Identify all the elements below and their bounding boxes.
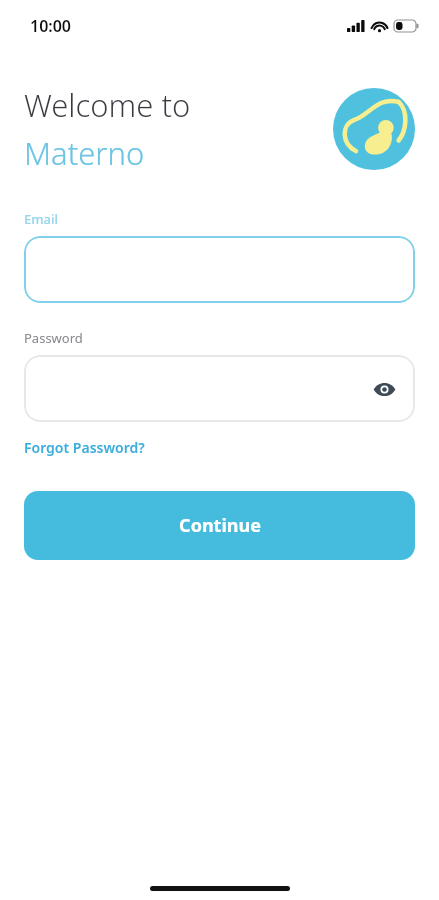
staticText: Password bbox=[24, 329, 83, 347]
button[interactable]: Continue bbox=[24, 491, 415, 560]
button[interactable]: Forgot Password? bbox=[24, 438, 145, 457]
staticText: Forgot Password? bbox=[24, 438, 145, 457]
staticText: Email bbox=[24, 210, 59, 228]
staticText: Continue bbox=[179, 513, 261, 538]
staticText: Materno bbox=[24, 132, 145, 174]
button[interactable]: Show password bbox=[367, 372, 401, 406]
staticText: 10:00 bbox=[30, 15, 72, 37]
button[interactable]: Show password bbox=[24, 355, 415, 422]
staticText: Welcome to bbox=[24, 84, 191, 126]
button[interactable] bbox=[24, 236, 415, 303]
